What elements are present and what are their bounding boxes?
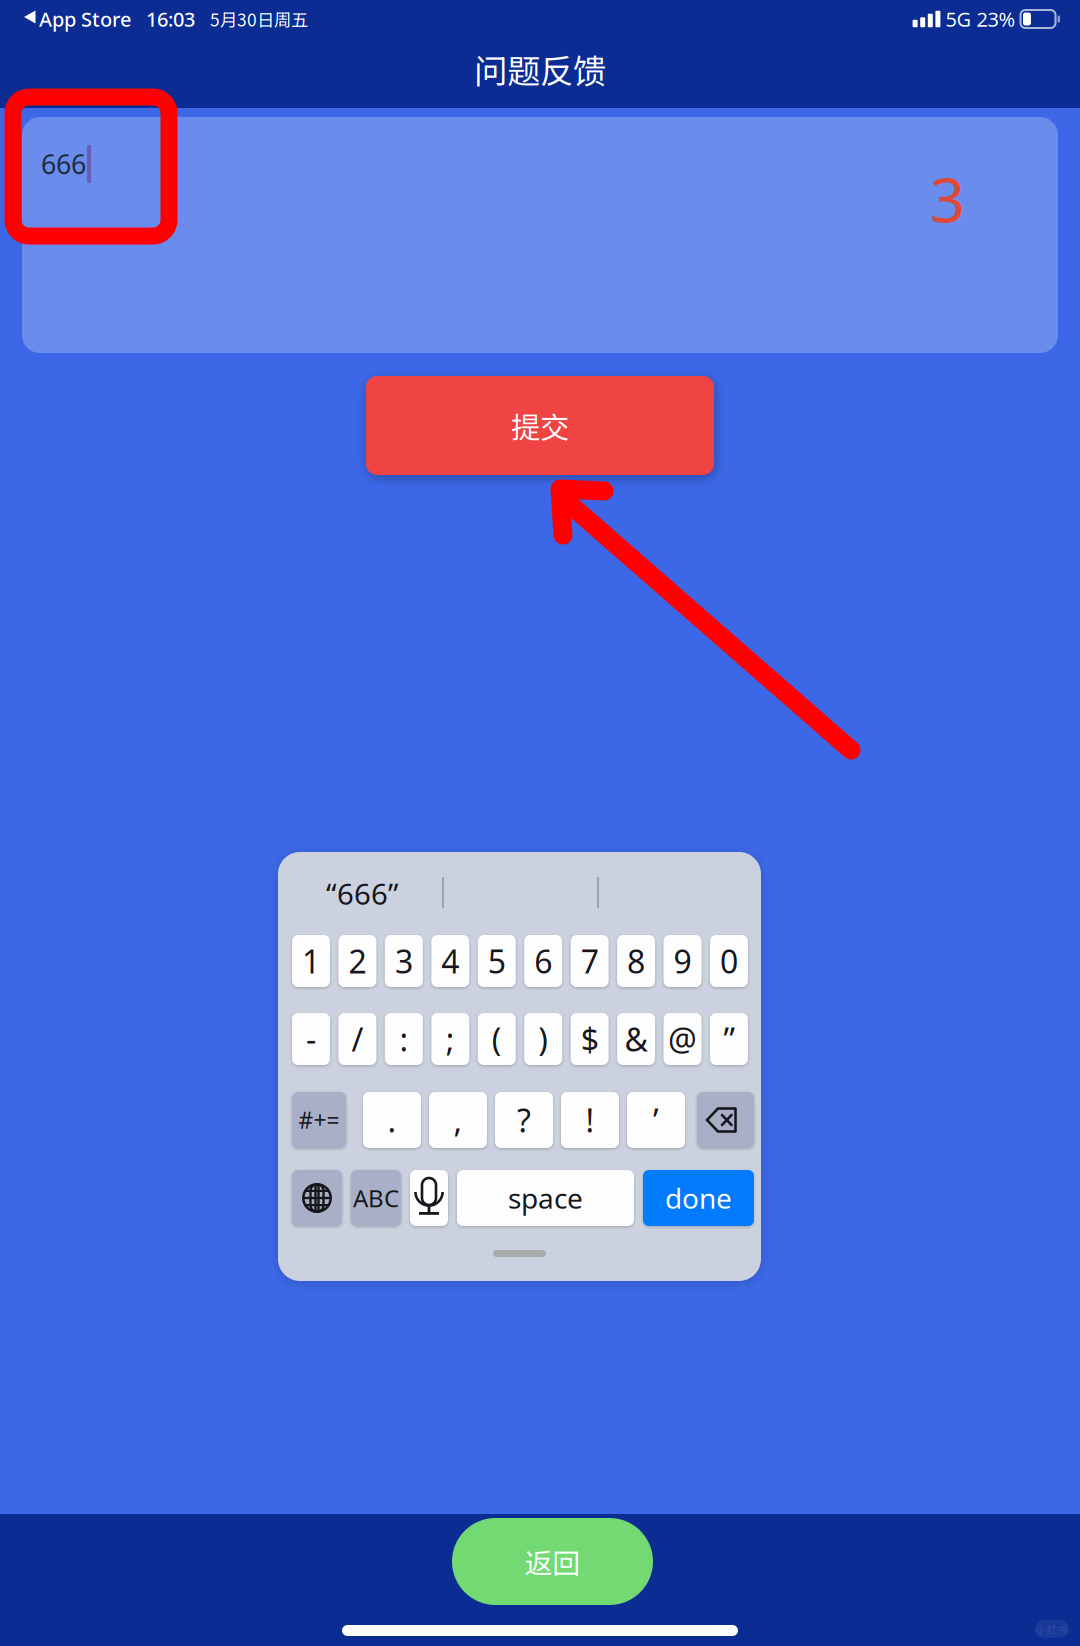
button[interactable]: Dictate: [410, 1170, 448, 1226]
button[interactable]: 0: [710, 935, 748, 987]
button[interactable]: 4: [431, 935, 469, 987]
button[interactable]: 提交: [366, 376, 714, 475]
button[interactable]: #+=: [292, 1092, 346, 1148]
staticText: 7: [581, 940, 599, 982]
button[interactable]: 返回: [452, 1518, 653, 1605]
staticText: 小红书: [1035, 1621, 1068, 1637]
button[interactable]: ”: [710, 1013, 748, 1065]
staticText: :: [399, 1018, 408, 1060]
staticText: #+=: [298, 1105, 339, 1135]
staticText: &: [625, 1018, 648, 1060]
staticText: 4: [441, 940, 459, 982]
staticText: -: [306, 1018, 316, 1060]
staticText: /: [351, 1018, 363, 1060]
staticText: ?: [517, 1099, 531, 1141]
button[interactable]: ’: [627, 1092, 685, 1148]
button[interactable]: 5: [478, 935, 516, 987]
staticText: ;: [446, 1018, 455, 1060]
button[interactable]: !: [561, 1092, 619, 1148]
button[interactable]: 3: [385, 935, 423, 987]
staticText: App Store: [34, 6, 131, 32]
staticText: 问题反馈: [474, 45, 606, 93]
button[interactable]: 9: [663, 935, 701, 987]
staticText: 返回: [524, 1541, 580, 1582]
staticText: 3: [395, 940, 413, 982]
button[interactable]: $: [571, 1013, 609, 1065]
staticText: done: [665, 1179, 732, 1217]
button[interactable]: ?: [495, 1092, 553, 1148]
button[interactable]: :: [385, 1013, 423, 1065]
button[interactable]: /: [338, 1013, 376, 1065]
button[interactable]: &: [617, 1013, 655, 1065]
button[interactable]: (: [478, 1013, 516, 1065]
staticText: (: [492, 1018, 502, 1060]
staticText: 16:03: [131, 6, 210, 32]
staticText: 5: [488, 940, 506, 982]
staticText: space: [508, 1179, 583, 1217]
staticText: !: [585, 1099, 594, 1141]
button[interactable]: @: [663, 1013, 701, 1065]
button[interactable]: ,: [429, 1092, 487, 1148]
staticText: “666”: [326, 874, 399, 913]
staticText: ,: [453, 1099, 462, 1141]
button[interactable]: ABC: [351, 1170, 401, 1226]
button[interactable]: Feedback text field: [22, 117, 1058, 353]
button[interactable]: 2: [338, 935, 376, 987]
staticText: 8: [627, 940, 645, 982]
staticText: 1: [302, 940, 320, 982]
staticText: $: [581, 1018, 599, 1060]
button[interactable]: [697, 1092, 754, 1148]
staticText: ABC: [353, 1182, 399, 1214]
staticText: 提交: [511, 404, 569, 447]
button[interactable]: 8: [617, 935, 655, 987]
button[interactable]: ): [524, 1013, 562, 1065]
button[interactable]: Switch keyboard: [292, 1170, 342, 1226]
button[interactable]: done: [643, 1170, 754, 1226]
button[interactable]: -: [292, 1013, 330, 1065]
staticText: 3: [930, 158, 965, 239]
staticText: 6: [534, 940, 552, 982]
button[interactable]: ;: [431, 1013, 469, 1065]
button[interactable]: space: [457, 1170, 634, 1226]
staticText: 5G: [940, 6, 976, 32]
button[interactable]: 7: [571, 935, 609, 987]
button[interactable]: 1: [292, 935, 330, 987]
staticText: 5月30日周五: [210, 6, 308, 32]
staticText: ”: [723, 1018, 734, 1060]
staticText: 0: [720, 940, 738, 982]
staticText: ’: [653, 1099, 659, 1141]
staticText: 9: [673, 940, 691, 982]
staticText: 2: [348, 940, 366, 982]
button[interactable]: 6: [524, 935, 562, 987]
staticText: @: [668, 1018, 697, 1060]
staticText: .: [387, 1099, 396, 1141]
button[interactable]: .: [363, 1092, 421, 1148]
staticText: 23%: [976, 6, 1020, 32]
staticText: 666: [41, 146, 86, 182]
staticText: ): [538, 1018, 548, 1060]
